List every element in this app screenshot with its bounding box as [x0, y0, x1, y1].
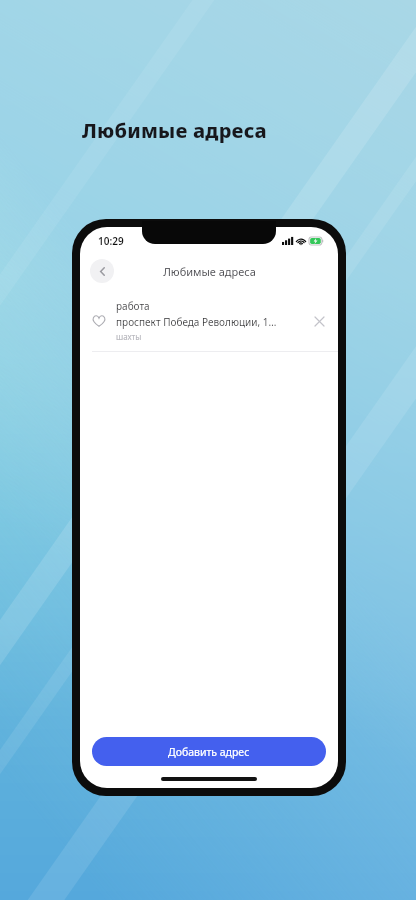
- staticText: работа: [116, 299, 150, 313]
- button[interactable]: работа: [80, 290, 338, 351]
- staticText: шахты: [116, 331, 142, 342]
- button[interactable]: Удалить адрес: [310, 312, 328, 330]
- staticText: проспект Победа Революции, 1…: [116, 315, 277, 329]
- button[interactable]: Назад: [90, 259, 114, 283]
- staticText: Любимые адреса: [163, 264, 256, 279]
- staticText: 10:29: [98, 234, 124, 248]
- staticText: Добавить адрес: [168, 745, 250, 759]
- button[interactable]: Добавить адрес: [92, 737, 326, 766]
- staticText: Любимые адреса: [82, 117, 267, 144]
